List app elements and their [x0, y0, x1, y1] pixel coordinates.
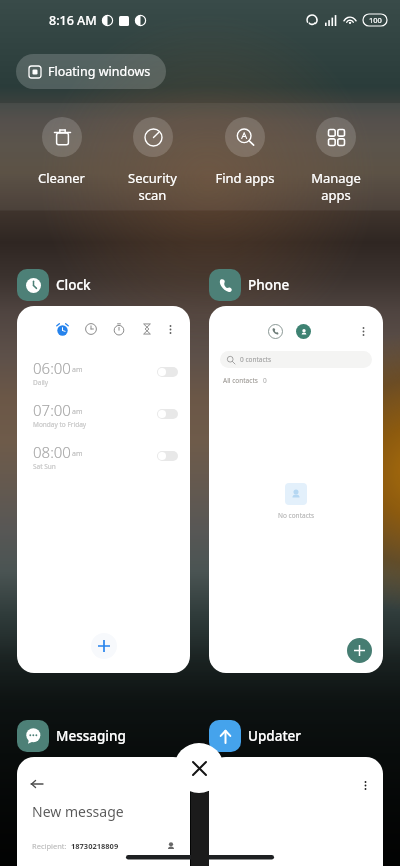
- staticText: am: [72, 407, 83, 417]
- staticText: Cleaner: [38, 169, 85, 187]
- staticText: 0 contacts: [240, 355, 272, 364]
- button[interactable]: 08:00: [17, 435, 190, 477]
- staticText: am: [72, 365, 83, 375]
- staticText: 06:00: [33, 358, 71, 378]
- staticText: 8:16 AM: [49, 12, 97, 29]
- staticText: Sat Sun: [33, 462, 56, 471]
- button[interactable]: Toggle alarm: [157, 409, 178, 419]
- button[interactable]: Cleaner: [16, 117, 107, 187]
- staticText: 18730218809: [71, 841, 119, 851]
- button[interactable]: Updater: [209, 720, 302, 752]
- staticText: am: [72, 449, 83, 459]
- button[interactable]: 06:00: [17, 306, 190, 673]
- button[interactable]: Toggle alarm: [157, 451, 178, 461]
- button[interactable]: Add alarm: [91, 633, 117, 659]
- staticText: All contacts: [223, 376, 258, 385]
- button[interactable]: Phone: [209, 269, 290, 301]
- staticText: Security scan: [128, 169, 177, 204]
- staticText: Find apps: [215, 169, 275, 187]
- button[interactable]: [209, 757, 383, 866]
- button[interactable]: Toggle alarm: [157, 367, 178, 377]
- staticText: Messaging: [56, 727, 126, 745]
- button[interactable]: Messaging: [17, 720, 126, 752]
- staticText: New message: [32, 802, 124, 821]
- button[interactable]: Add contact: [347, 638, 372, 663]
- button[interactable]: 0 contacts: [220, 351, 372, 368]
- staticText: Manage apps: [311, 169, 361, 204]
- staticText: Daily: [33, 378, 49, 387]
- staticText: Updater: [248, 727, 302, 745]
- staticText: 07:00: [33, 400, 71, 420]
- staticText: Clock: [56, 276, 91, 294]
- staticText: 100: [369, 15, 382, 25]
- button[interactable]: Find apps: [199, 117, 290, 187]
- staticText: 08:00: [33, 442, 71, 462]
- staticText: Recipient:: [32, 841, 67, 851]
- button[interactable]: Security scan: [107, 117, 198, 204]
- button[interactable]: Manage apps: [290, 117, 381, 204]
- button[interactable]: New message: [17, 757, 190, 866]
- button[interactable]: 06:00: [17, 351, 190, 393]
- staticText: Floating windows: [48, 63, 151, 80]
- button[interactable]: Close all: [174, 743, 224, 793]
- staticText: 0: [263, 376, 267, 385]
- staticText: Monday to Friday: [33, 420, 87, 429]
- staticText: No contacts: [278, 511, 315, 520]
- button[interactable]: 0 contacts: [209, 306, 383, 673]
- button[interactable]: 07:00: [17, 393, 190, 435]
- button[interactable]: Clock: [17, 269, 91, 301]
- button[interactable]: Floating windows: [16, 54, 166, 89]
- staticText: Phone: [248, 276, 290, 294]
